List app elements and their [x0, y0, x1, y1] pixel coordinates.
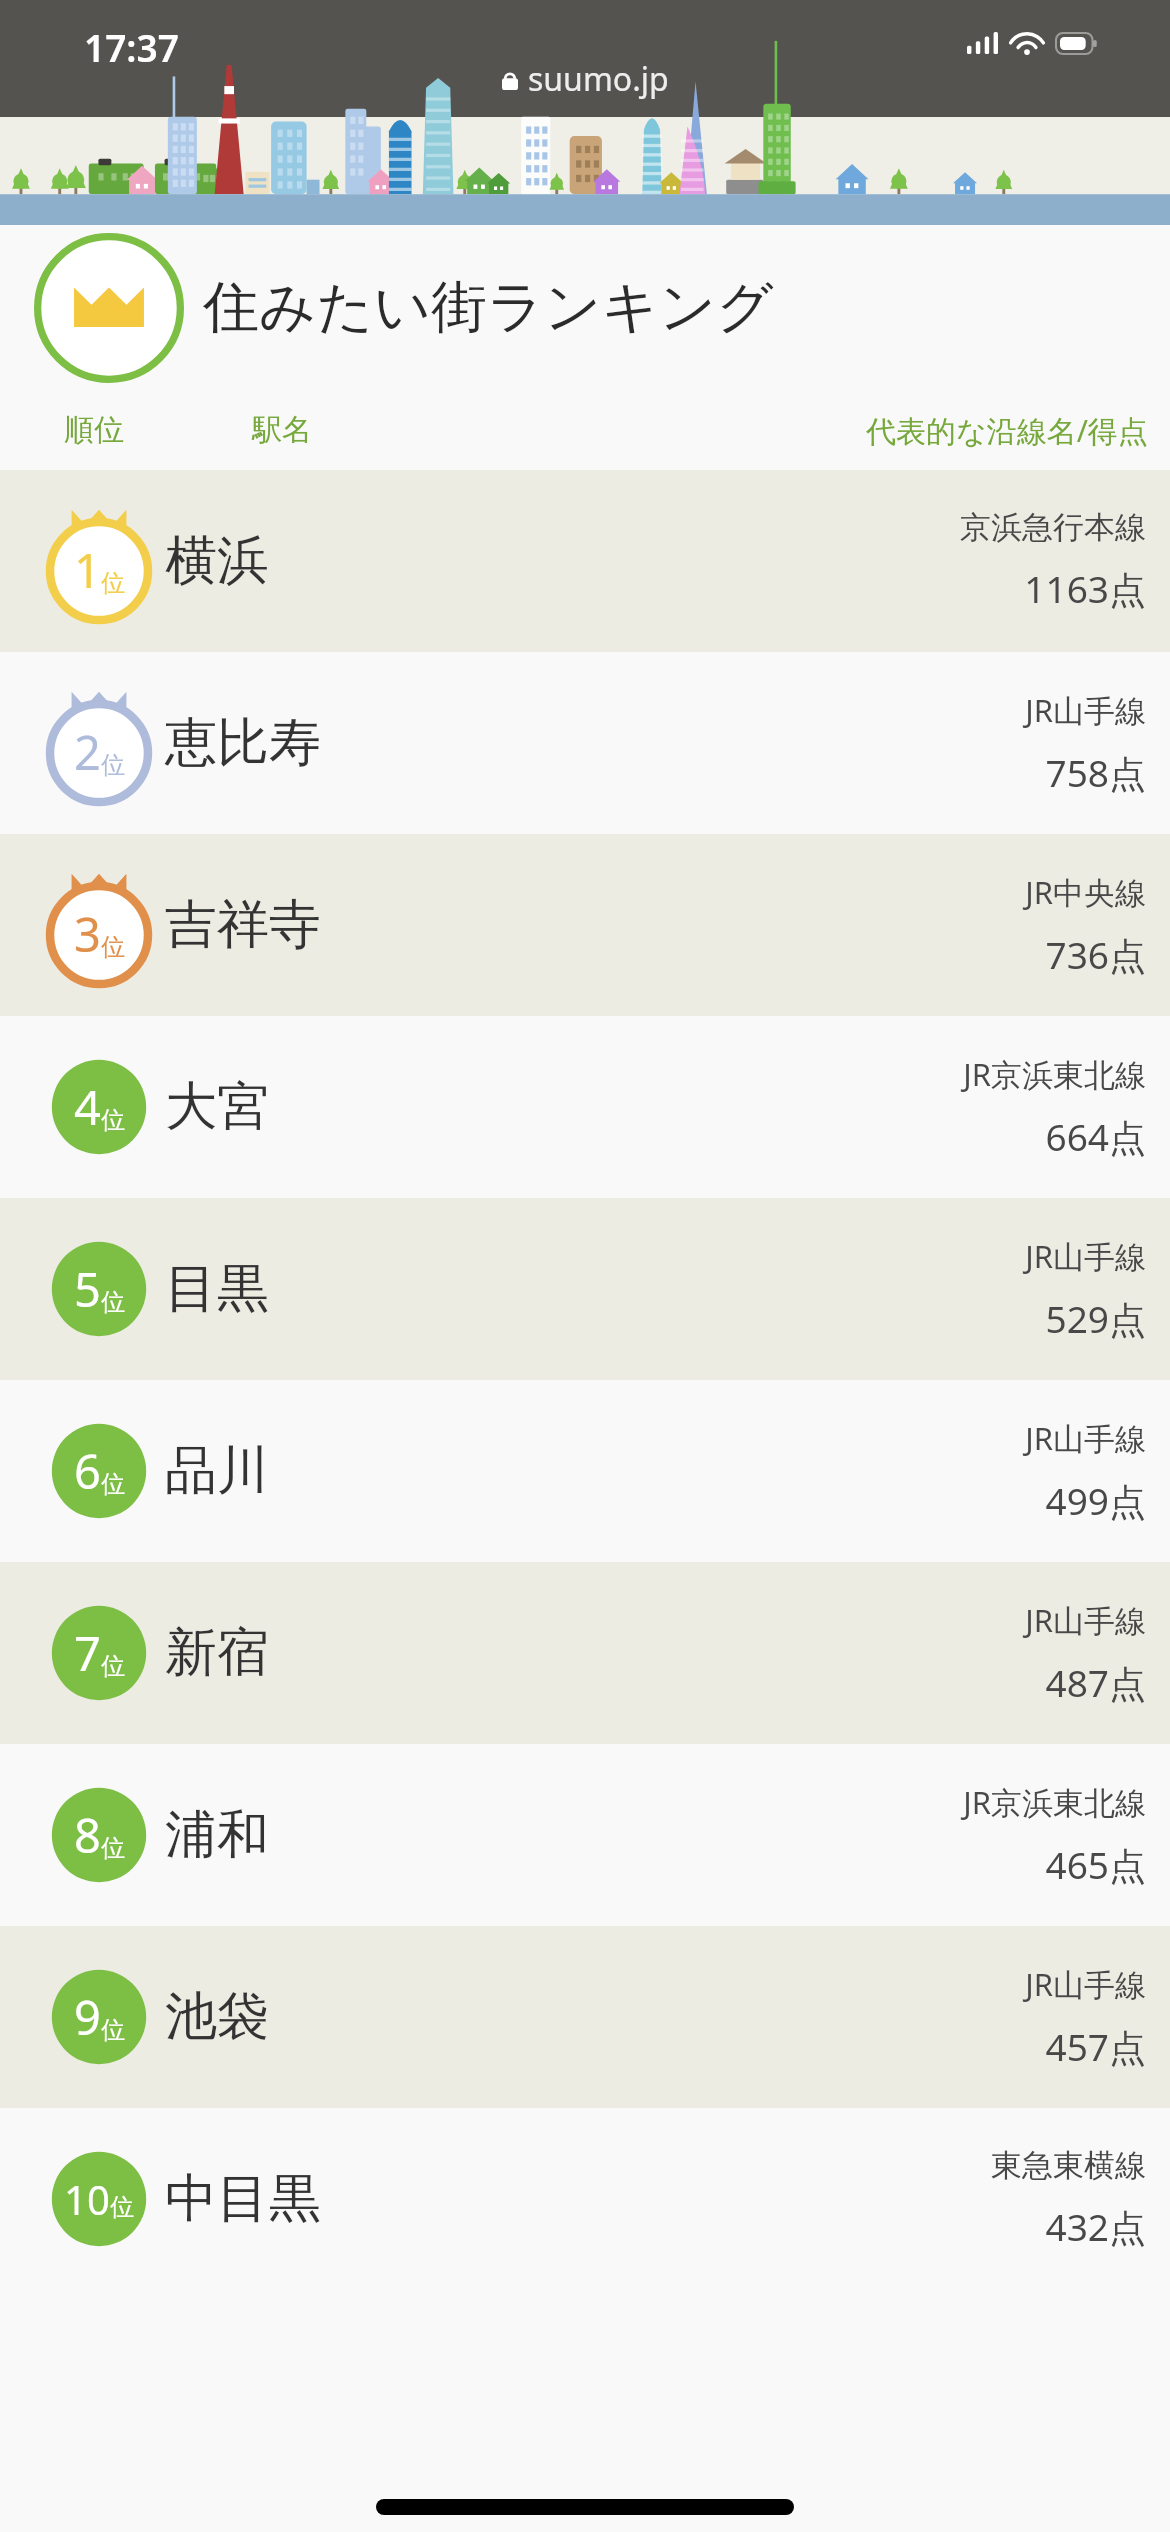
- staticText: 10: [64, 2172, 110, 2226]
- staticText: 432点: [1045, 2201, 1146, 2252]
- button[interactable]: 5: [0, 1198, 1170, 1380]
- staticText: 恵比寿: [165, 710, 321, 776]
- staticText: 736点: [1045, 929, 1146, 980]
- button[interactable]: 4: [0, 1016, 1170, 1198]
- staticText: 758点: [1045, 747, 1146, 798]
- staticText: 位: [110, 2192, 134, 2222]
- staticText: 東急東横線: [991, 2146, 1146, 2185]
- button[interactable]: 8: [0, 1744, 1170, 1926]
- staticText: JR山手線: [1025, 689, 1146, 731]
- staticText: 位: [101, 1287, 125, 1317]
- staticText: 大宮: [165, 1074, 269, 1140]
- staticText: 1: [74, 538, 101, 602]
- staticText: 664点: [1045, 1111, 1146, 1162]
- staticText: 17:37: [84, 22, 179, 72]
- staticText: 住みたい街ランキング: [203, 272, 774, 343]
- staticText: 位: [101, 1833, 125, 1863]
- staticText: 2: [74, 720, 101, 784]
- staticText: 位: [101, 2015, 125, 2045]
- staticText: 位: [101, 1651, 125, 1681]
- button[interactable]: 3: [0, 834, 1170, 1016]
- staticText: 位: [101, 932, 125, 962]
- staticText: 位: [101, 1469, 125, 1499]
- staticText: JR京浜東北線: [963, 1053, 1146, 1095]
- button[interactable]: 2: [0, 652, 1170, 834]
- staticText: 代表的な沿線名/得点: [866, 410, 1148, 451]
- staticText: 横浜: [165, 528, 269, 594]
- button[interactable]: 6: [0, 1380, 1170, 1562]
- staticText: 6: [74, 1439, 101, 1503]
- staticText: 京浜急行本線: [960, 508, 1146, 547]
- staticText: suumo.jp: [528, 57, 669, 101]
- staticText: JR山手線: [1025, 1963, 1146, 2005]
- staticText: 529点: [1045, 1293, 1146, 1344]
- staticText: 駅名: [252, 411, 312, 449]
- staticText: 487点: [1045, 1657, 1146, 1708]
- staticText: 浦和: [165, 1802, 269, 1868]
- staticText: JR京浜東北線: [963, 1781, 1146, 1823]
- staticText: 順位: [64, 411, 124, 449]
- staticText: JR山手線: [1025, 1235, 1146, 1277]
- staticText: 5: [74, 1257, 101, 1321]
- staticText: JR中央線: [1025, 871, 1146, 913]
- staticText: 3: [74, 902, 101, 966]
- staticText: 品川: [165, 1438, 269, 1504]
- staticText: 9: [74, 1985, 101, 2049]
- button[interactable]: 10: [0, 2108, 1170, 2290]
- staticText: 4: [74, 1075, 101, 1139]
- staticText: 位: [101, 568, 125, 598]
- staticText: JR山手線: [1025, 1417, 1146, 1459]
- staticText: 位: [101, 1105, 125, 1135]
- button[interactable]: 1: [0, 470, 1170, 652]
- staticText: 吉祥寺: [165, 892, 321, 958]
- staticText: 目黒: [165, 1256, 269, 1322]
- staticText: 位: [101, 750, 125, 780]
- staticText: 中目黒: [165, 2166, 321, 2232]
- button[interactable]: 9: [0, 1926, 1170, 2108]
- staticText: JR山手線: [1025, 1599, 1146, 1641]
- staticText: 新宿: [165, 1620, 269, 1686]
- staticText: 8: [74, 1803, 101, 1867]
- staticText: 457点: [1045, 2021, 1146, 2072]
- staticText: 465点: [1045, 1839, 1146, 1890]
- button[interactable]: 7: [0, 1562, 1170, 1744]
- staticText: 7: [74, 1621, 101, 1685]
- staticText: 499点: [1045, 1475, 1146, 1526]
- staticText: 池袋: [165, 1984, 269, 2050]
- staticText: 1163点: [1024, 563, 1146, 614]
